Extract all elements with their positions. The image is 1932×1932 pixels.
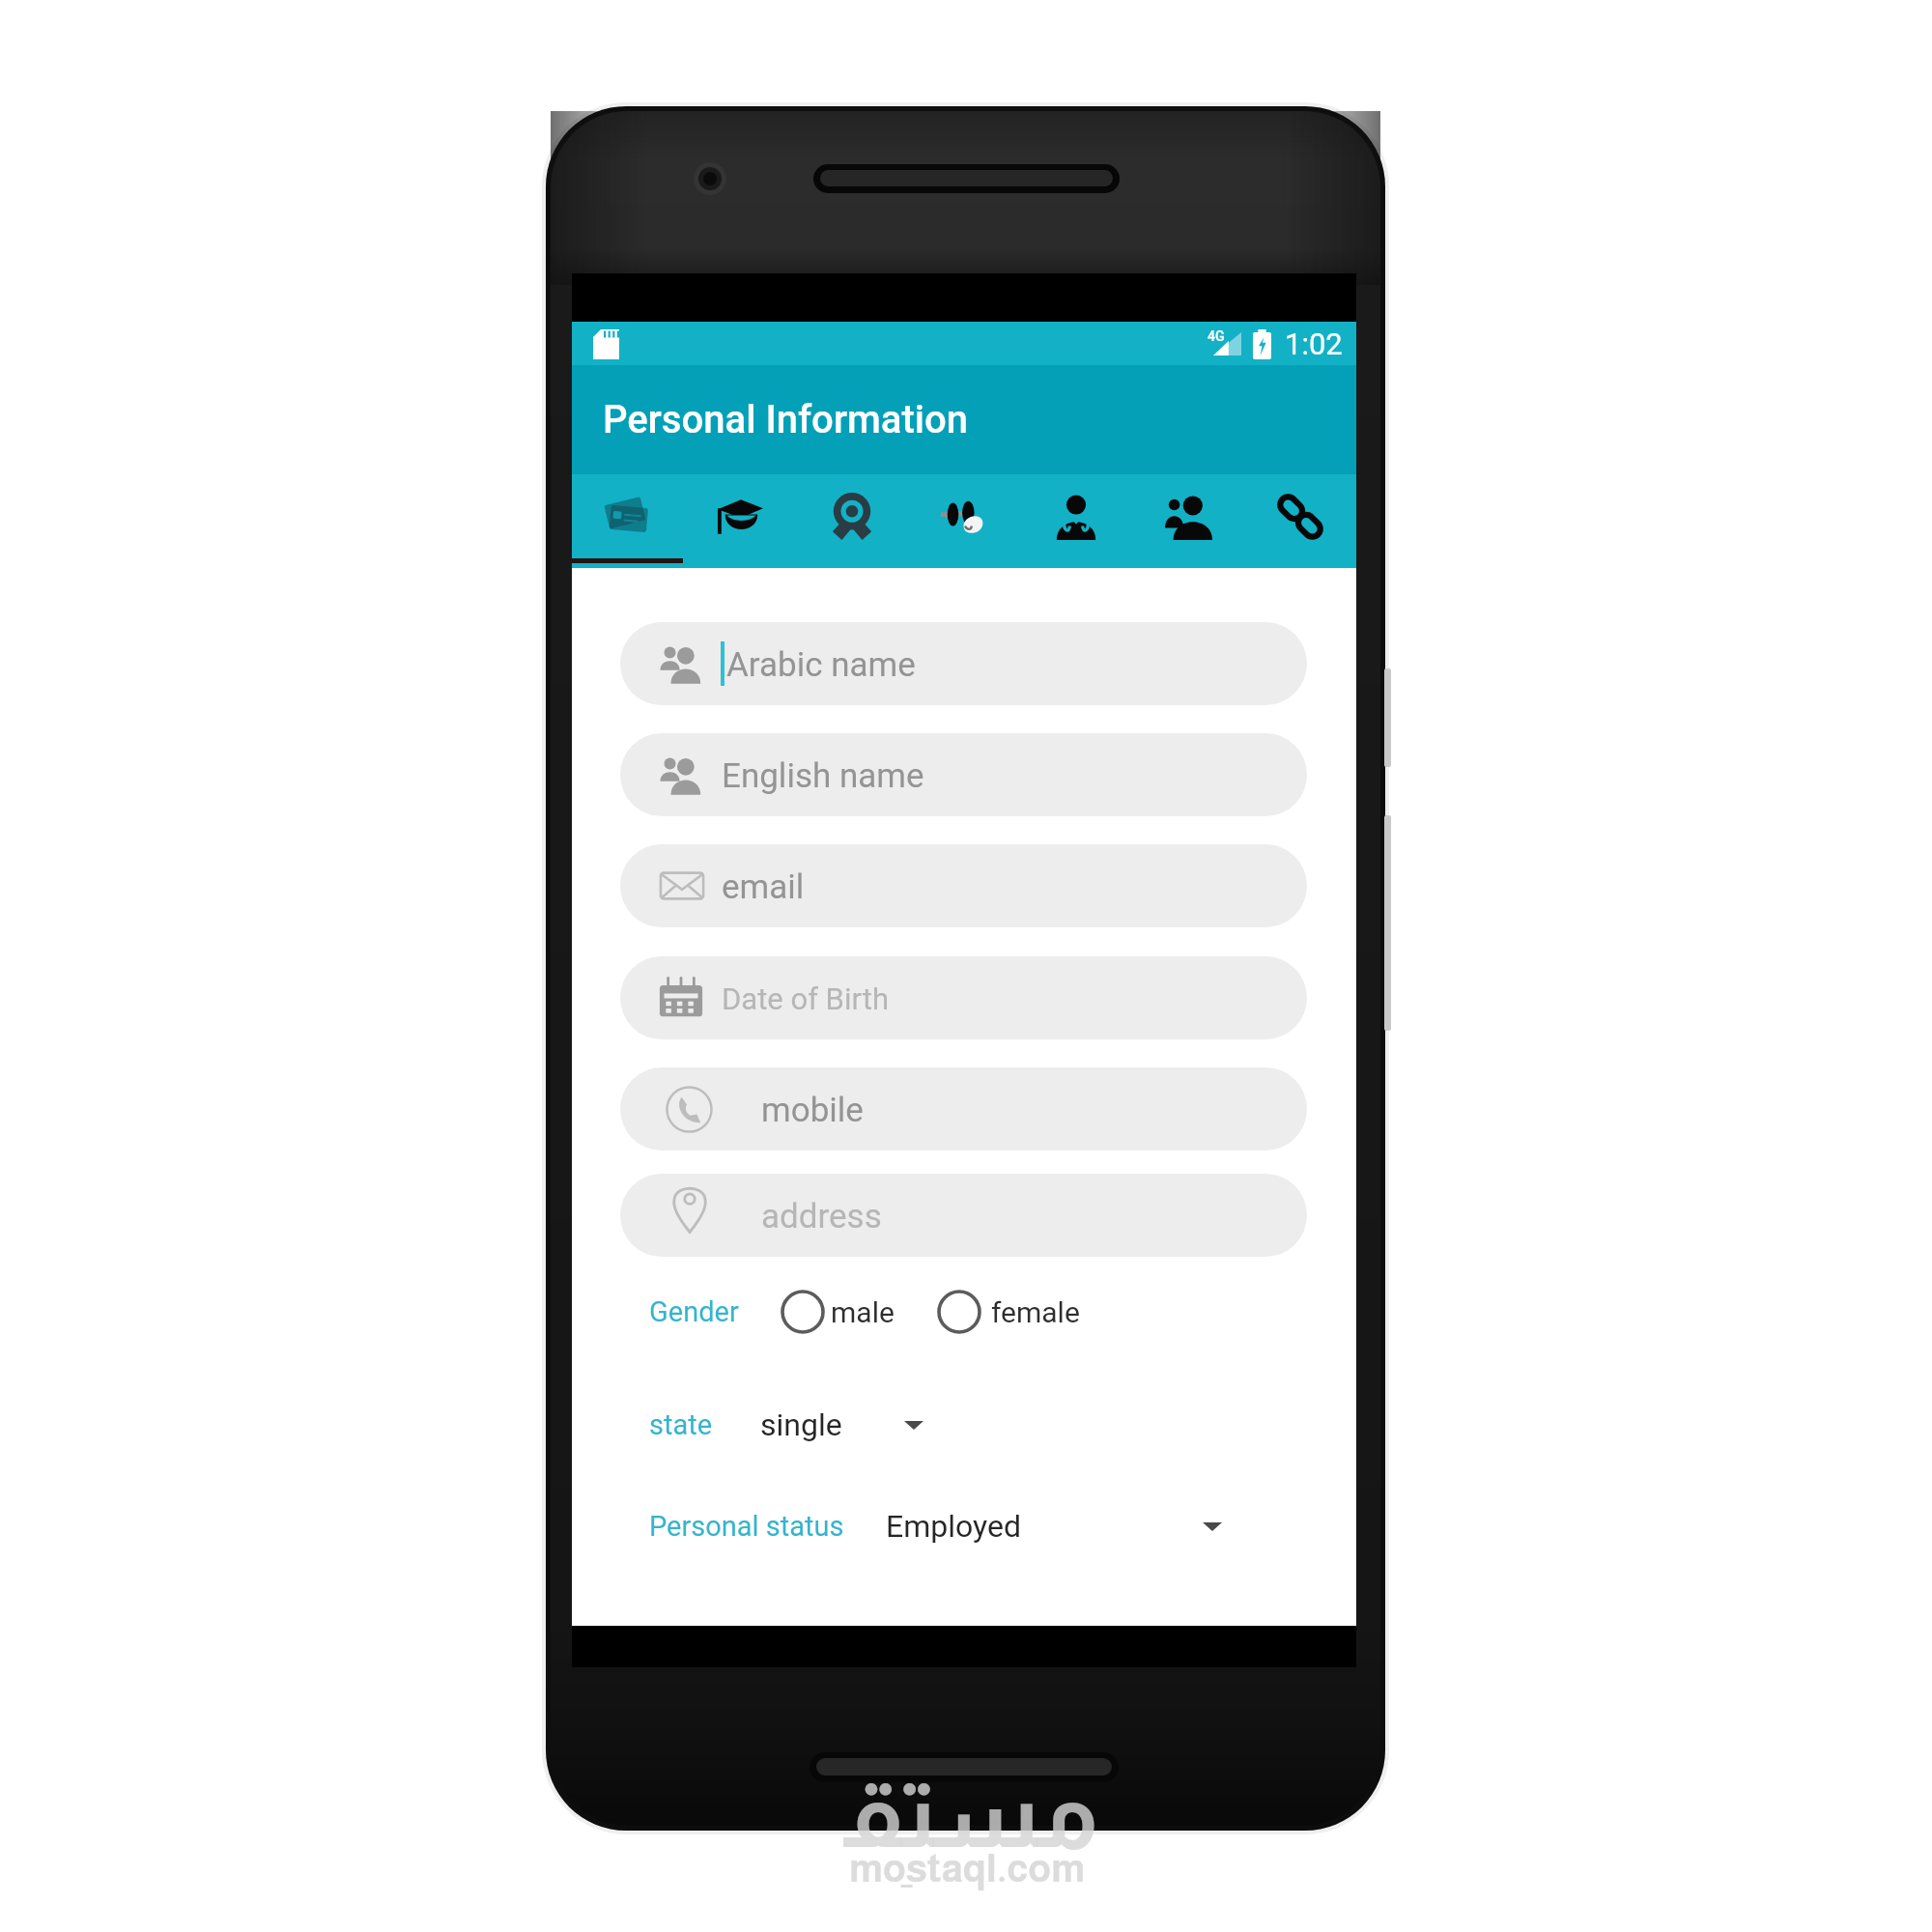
button[interactable]: female [937,1290,1080,1334]
staticText: single [760,1406,842,1443]
staticText: 4G [1207,328,1225,344]
button[interactable]: single [760,1403,923,1447]
staticText: address [761,1197,882,1236]
staticText: Employed [886,1508,1021,1545]
button[interactable]: Arabic name [620,622,1307,705]
staticText: mobile [761,1091,864,1130]
staticText: مستقل [843,1762,1125,1888]
button[interactable]: Date of Birth [620,956,1307,1039]
button[interactable]: Personal information [572,474,684,568]
button[interactable]: male [781,1290,895,1334]
button[interactable]: Certificates [796,474,908,568]
button[interactable]: Skills [908,474,1020,568]
staticText: female [991,1295,1080,1329]
staticText: Personal Information [603,397,969,442]
staticText: Personal status [649,1510,844,1543]
staticText: 1:02 [1285,327,1343,361]
button[interactable]: mobile [620,1067,1307,1151]
staticText: state [649,1408,713,1441]
staticText: Date of Birth [722,981,889,1016]
staticText: email [722,867,805,907]
staticText: Gender [649,1295,739,1328]
button[interactable]: Links [1244,474,1356,568]
button[interactable]: Experience [1020,474,1132,568]
button[interactable]: email [620,844,1307,927]
button[interactable]: address [620,1174,1307,1257]
button[interactable]: English name [620,733,1307,816]
button[interactable]: Employed [886,1504,1222,1548]
button[interactable]: Education [684,474,796,568]
staticText: Arabic name [726,645,916,685]
button[interactable]: References [1132,474,1244,568]
staticText: male [831,1295,895,1329]
staticText: mostaql.com [849,1847,1086,1890]
staticText: English name [722,756,924,796]
